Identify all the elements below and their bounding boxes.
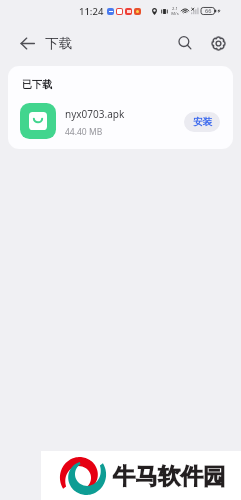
button[interactable]: Settings: [202, 22, 234, 64]
staticText: 安装: [193, 116, 212, 128]
staticText: nyx0703.apk: [65, 107, 125, 121]
staticText: 66: [205, 7, 212, 15]
staticText: 44.40 MB: [65, 126, 103, 138]
button[interactable]: Back: [0, 22, 42, 64]
staticText: 牛马软件园: [113, 462, 226, 490]
button[interactable]: nyx0703.apk: [8, 103, 184, 139]
staticText: 已下载: [22, 78, 52, 91]
staticText: 11:24: [79, 5, 104, 18]
button[interactable]: Search: [169, 22, 201, 64]
staticText: 2.1 M/s: [171, 6, 179, 16]
button[interactable]: 安装: [184, 112, 220, 132]
staticText: 下载: [45, 35, 72, 52]
